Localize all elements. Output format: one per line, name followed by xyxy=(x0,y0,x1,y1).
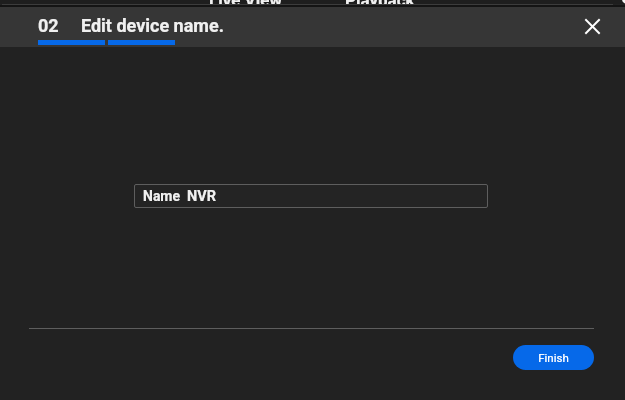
staticText: Edit device name. xyxy=(81,15,224,36)
button[interactable]: Finish xyxy=(513,345,594,370)
staticText: 02 xyxy=(38,15,59,36)
button[interactable]: Close xyxy=(580,14,604,38)
staticText: NVR xyxy=(187,188,216,205)
staticText: Live View xyxy=(209,0,282,10)
staticText: Name xyxy=(143,188,181,204)
button[interactable]: Name xyxy=(134,184,488,208)
staticText: Playback xyxy=(345,0,415,10)
staticText: Finish xyxy=(538,351,569,364)
